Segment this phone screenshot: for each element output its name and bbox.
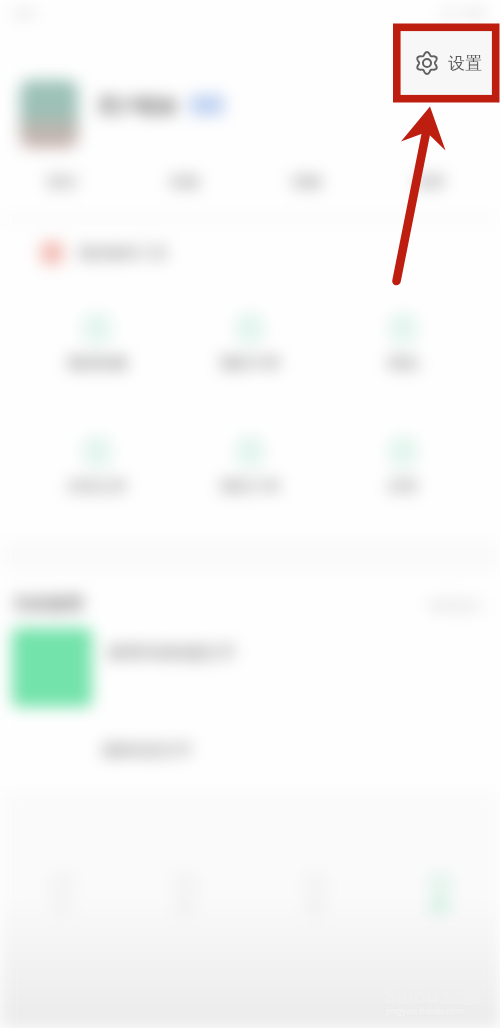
staticText: 描述信息文字 [102,741,192,760]
staticText: 我的订单 [220,477,280,496]
staticText: 钱包 [388,354,418,373]
staticText: 待发 [170,173,200,192]
button[interactable]: 浏览记录 [47,438,147,496]
staticText: 待付 [47,173,77,192]
staticText: 浏览记录 [67,477,127,496]
staticText: 设置 [448,53,482,74]
button[interactable]: 我的订单 [200,438,300,496]
button[interactable]: 我的卡券 [200,315,300,373]
button[interactable]: More [404,594,488,616]
button[interactable]: 设置 Settings [401,31,495,95]
staticText: 待评 [415,173,445,192]
button[interactable]: Profile avatar [20,80,78,148]
button[interactable]: 待评 [390,165,470,199]
staticText: 我的 [429,899,451,913]
button[interactable]: 我的收藏 [47,315,147,373]
button[interactable]: 待付 [22,165,102,199]
staticText: 我的收藏 [67,354,127,373]
staticText: 设置 [388,477,418,496]
button[interactable]: 设置 [353,438,453,496]
staticText: 我的服务工具 [78,244,168,263]
staticText: 为你推荐 [12,593,84,616]
button[interactable]: 钱包 [353,315,453,373]
button[interactable]: 我的 [395,874,485,913]
button[interactable]: 待收 [267,165,347,199]
button[interactable]: 待发 [145,165,225,199]
staticText: 用户昵称 [98,94,178,119]
staticText: 推荐内容标题文字 [108,643,236,663]
staticText: 待收 [292,173,322,192]
staticText: 我的卡券 [220,354,280,373]
